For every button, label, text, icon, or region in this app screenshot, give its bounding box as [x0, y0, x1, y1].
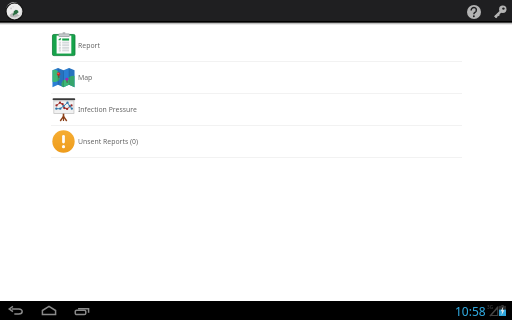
- button[interactable]: Map: [0, 62, 512, 94]
- staticText: Report: [78, 41, 100, 50]
- button[interactable]: Back: [0, 301, 32, 320]
- button[interactable]: Recent apps: [65, 301, 98, 320]
- staticText: Infection Pressure: [78, 105, 137, 114]
- staticText: Map: [78, 73, 93, 82]
- button[interactable]: Home: [32, 301, 65, 320]
- button[interactable]: Report: [0, 30, 512, 62]
- staticText: 3G: [487, 304, 493, 310]
- button[interactable]: Unsent Reports (0): [0, 126, 512, 158]
- button[interactable]: License key: [487, 1, 512, 23]
- button[interactable]: Open navigation: [6, 3, 23, 20]
- button[interactable]: Infection Pressure: [0, 94, 512, 126]
- staticText: 10:58: [455, 303, 486, 319]
- staticText: Unsent Reports (0): [78, 137, 139, 146]
- button[interactable]: Help: [461, 1, 486, 23]
